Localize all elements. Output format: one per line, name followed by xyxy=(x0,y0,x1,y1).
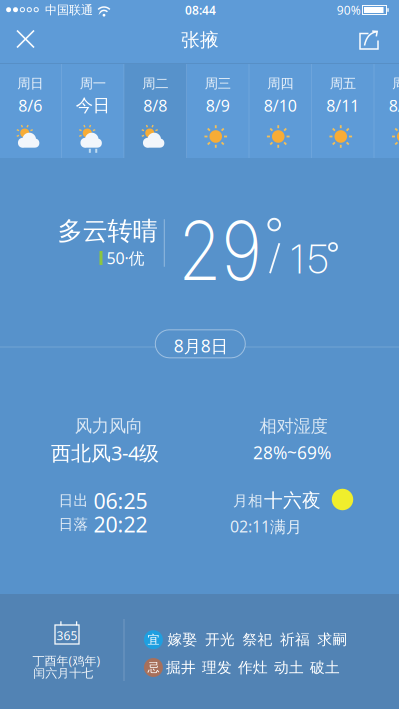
staticText: 02:11满月 xyxy=(230,516,302,537)
button[interactable]: 周日 xyxy=(0,64,61,158)
staticText: 8月8日 xyxy=(174,334,228,357)
button[interactable]: 周三 xyxy=(187,64,249,158)
button[interactable]: 周六 xyxy=(374,64,399,158)
staticText: 周一 xyxy=(80,75,106,92)
staticText: 日落 xyxy=(58,515,88,533)
staticText: 理发 xyxy=(202,658,232,676)
button[interactable]: 周四 xyxy=(249,64,311,158)
staticText: 周二 xyxy=(142,75,168,92)
staticText: 8/8 xyxy=(143,95,167,116)
staticText: 08:44 xyxy=(185,2,216,18)
staticText: 祭祀 xyxy=(242,630,272,648)
staticText: 周三 xyxy=(205,75,231,92)
staticText: 50·优 xyxy=(106,247,144,269)
staticText: 8/12 xyxy=(389,95,399,116)
staticText: 8/11 xyxy=(326,95,359,116)
staticText: 破土 xyxy=(310,658,340,676)
staticText: 29 xyxy=(171,201,268,300)
button[interactable]: 分享 xyxy=(347,21,389,61)
staticText: 8/6 xyxy=(18,95,42,116)
staticText: 月相 xyxy=(233,492,263,510)
staticText: 作灶 xyxy=(238,658,268,676)
staticText: 今日 xyxy=(76,95,110,116)
staticText: 周日 xyxy=(17,75,43,92)
staticText: 日出 xyxy=(58,492,88,510)
staticText: 28%~69% xyxy=(253,441,331,464)
staticText: 风力风向 xyxy=(75,415,143,437)
staticText: 张掖 xyxy=(181,28,219,51)
staticText: 宜 xyxy=(147,632,159,647)
staticText: 动土 xyxy=(274,658,304,676)
staticText: 祈福 xyxy=(280,630,310,648)
staticText: 求嗣 xyxy=(317,630,347,648)
staticText: 十六夜 xyxy=(264,489,321,512)
staticText: 周六 xyxy=(392,75,399,92)
staticText: 8/9 xyxy=(206,95,230,116)
button[interactable]: 关闭 xyxy=(3,17,47,61)
staticText: 周五 xyxy=(330,75,356,92)
staticText: 忌 xyxy=(147,660,159,675)
staticText: 周四 xyxy=(267,75,293,92)
staticText: 90% xyxy=(337,2,361,18)
staticText: 06:25 xyxy=(93,486,147,515)
staticText: 中国联通 xyxy=(45,3,93,17)
staticText: 闰六月十七 xyxy=(33,666,93,681)
staticText: 365 xyxy=(56,627,77,643)
staticText: 丁酉年(鸡年) xyxy=(32,652,100,668)
staticText: 掘井 xyxy=(166,658,196,676)
staticText: 20:22 xyxy=(93,510,147,538)
staticText: 嫁娶 xyxy=(167,630,197,648)
button[interactable]: 万年历 xyxy=(30,615,104,683)
button[interactable]: 周五 xyxy=(312,64,374,158)
staticText: 多云转晴 xyxy=(57,215,157,246)
staticText: 相对湿度 xyxy=(259,416,327,437)
button[interactable]: 周一 xyxy=(62,64,124,158)
staticText: 8/10 xyxy=(264,95,297,116)
staticText: 西北风3-4级 xyxy=(51,439,159,466)
button[interactable]: 周二 xyxy=(124,64,186,158)
button[interactable]: 8月8日 xyxy=(155,330,245,358)
staticText: 开光 xyxy=(205,630,235,648)
staticText: 15 xyxy=(290,235,328,283)
